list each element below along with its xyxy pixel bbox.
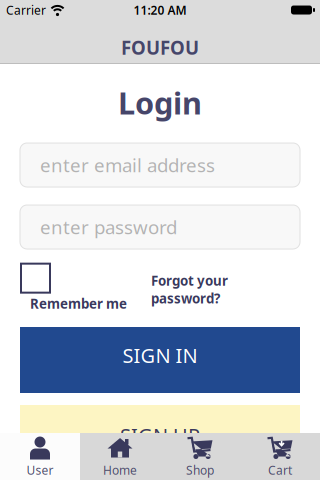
- staticText: enter email address: [40, 153, 215, 177]
- staticText: Remember me: [30, 295, 127, 312]
- button[interactable]: Shop: [160, 433, 240, 480]
- staticText: enter password: [40, 215, 177, 239]
- button[interactable]: Home: [80, 433, 160, 480]
- staticText: 11:20 AM: [133, 2, 186, 18]
- button[interactable]: SIGN UP: [20, 405, 300, 433]
- button[interactable]: Remember me: [21, 264, 127, 312]
- button[interactable]: Cart: [240, 433, 320, 480]
- staticText: Cart: [268, 462, 292, 478]
- button[interactable]: User: [0, 433, 80, 480]
- staticText: SIGN IN: [122, 342, 197, 369]
- staticText: Shop: [186, 462, 214, 478]
- staticText: Carrier: [6, 2, 46, 18]
- button[interactable]: SIGN IN: [20, 327, 300, 393]
- staticText: SIGN UP: [120, 422, 200, 449]
- button[interactable]: Forgot your password?: [151, 264, 228, 307]
- staticText: FOUFOU: [121, 35, 199, 60]
- staticText: Login: [118, 82, 202, 123]
- staticText: User: [26, 462, 53, 478]
- staticText: Forgot your password?: [151, 272, 228, 307]
- staticText: Home: [103, 462, 137, 478]
